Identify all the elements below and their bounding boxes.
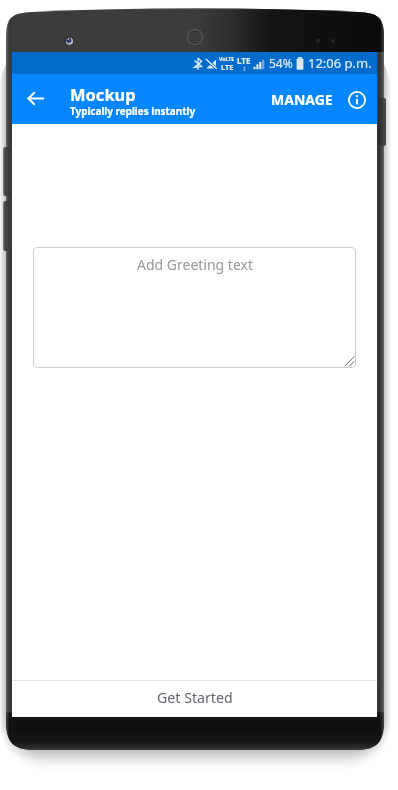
staticText: Mockup	[70, 83, 136, 105]
staticText: Get Started	[157, 688, 233, 707]
staticText: MANAGE	[271, 90, 333, 109]
staticText: 54%	[269, 55, 293, 71]
staticText: 12:06 p.m.	[308, 54, 372, 72]
button[interactable]: MANAGE	[266, 78, 338, 121]
staticText: VoLTE	[219, 55, 235, 62]
staticText: LTE	[221, 62, 234, 72]
button[interactable]: Add Greeting text	[33, 247, 356, 368]
button[interactable]: Info	[341, 75, 373, 124]
staticText: Typically replies instantly	[70, 104, 196, 117]
button[interactable]: Get Started	[12, 681, 377, 717]
staticText: Add Greeting text	[137, 255, 253, 274]
staticText: LTE	[237, 55, 251, 66]
button[interactable]: Back	[12, 75, 58, 124]
staticText: ↕	[242, 66, 247, 72]
